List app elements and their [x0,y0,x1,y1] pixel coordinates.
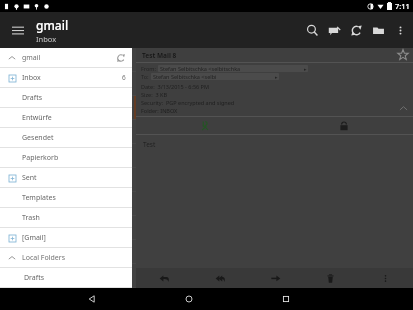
button[interactable]: Sent [0,168,132,187]
button[interactable]: Entwürfe [0,108,132,127]
staticText: Test Mail 8 [142,51,177,60]
button[interactable]: Compose [323,12,345,48]
button[interactable]: Papierkorb [0,148,132,167]
staticText: ▸ [275,74,278,80]
staticText: Inbox [36,34,57,44]
staticText: ▸ [304,66,307,72]
staticText: 6 [122,73,126,82]
staticText: Sent [22,173,132,183]
button[interactable]: Delete [303,268,358,288]
staticText: 7:11 [395,1,410,11]
staticText: gmail [36,17,69,33]
button[interactable]: Local Folders [0,248,132,267]
button[interactable]: Refresh account [113,50,129,66]
button[interactable]: [Gmail] [0,228,132,247]
button[interactable]: 1 PM [0,264,136,288]
staticText: Entwürfe [22,113,132,123]
staticText: Trash [22,213,132,223]
staticText: 5 PM [109,121,122,128]
staticText: [Gmail] [22,233,132,243]
button[interactable]: Search [301,12,323,48]
staticText: Date: 3/13/2015 - 6:56 PM [141,83,209,90]
staticText: Folder: INBOX [141,107,178,114]
staticText: Test [143,140,156,149]
button[interactable]: Star [396,48,410,62]
staticText: Size: 3 KB [141,91,168,98]
staticText: Inbox [22,73,122,83]
button[interactable]: 4 PM [0,168,136,192]
staticText: Stefan Selbitschka <selbi [153,73,217,80]
button[interactable]: More options [389,12,411,48]
button[interactable]: Stefan Selbitschka <selbitschka [158,65,308,72]
staticText: Drafts [24,273,132,283]
button[interactable]: 5 PM [0,120,136,144]
staticText: Local Folders [22,253,132,263]
button[interactable]: Forward [248,268,303,288]
button[interactable]: 4 PM [0,144,136,168]
button[interactable]: Reply all [192,268,248,288]
button[interactable]: Recent apps [273,288,299,310]
button[interactable]: 2 PM [0,240,136,264]
staticText: 2 PM [109,241,122,248]
staticText: To: [141,73,149,80]
button[interactable]: Folders [367,12,389,48]
staticText: From: [141,65,156,72]
staticText: Papierkorb [22,153,132,163]
button[interactable]: 3 PM [0,192,136,216]
button[interactable]: Refresh [345,12,367,48]
button[interactable]: Back [79,288,105,310]
button[interactable]: 6 PM [0,72,136,96]
staticText: 1 PM [109,265,122,272]
staticText: 4 PM [109,145,122,152]
button[interactable]: 7 PM [0,48,136,72]
button[interactable]: Reply [136,268,192,288]
button[interactable]: Encrypted [274,117,413,134]
button[interactable]: Collapse header [396,101,410,115]
button[interactable]: 3 PM [0,216,136,240]
staticText: Stefan Selbitschka <selbitschka [160,65,241,72]
button[interactable]: 6 PM [0,96,136,120]
staticText: Security: PGP encrypted and signed [141,99,235,106]
staticText: Templates [22,193,132,203]
staticText: 7 PM [109,49,122,56]
staticText: Drafts [22,93,132,103]
button[interactable]: Inbox [0,68,132,87]
staticText: gmail [22,53,113,63]
button[interactable]: Drafts [0,268,132,287]
button[interactable]: gmail [0,48,132,67]
button[interactable]: Gesendet [0,128,132,147]
button[interactable]: Home [176,288,202,310]
button[interactable]: Stefan Selbitschka <selbi [151,73,279,80]
button[interactable]: Drafts [0,88,132,107]
button[interactable]: Open navigation drawer [0,12,36,48]
button[interactable]: Trash [0,208,132,227]
button[interactable]: Templates [0,188,132,207]
staticText: Gesendet [22,133,132,143]
